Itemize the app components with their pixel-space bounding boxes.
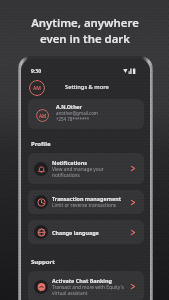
staticText: AM xyxy=(39,113,47,119)
staticText: another@gmail.com xyxy=(56,110,98,116)
staticText: +254 78******* xyxy=(56,116,90,122)
staticText: Activate Chat Banking xyxy=(52,277,112,284)
button[interactable]: AM xyxy=(28,99,144,129)
staticText: Transact and more with Equity's virtual … xyxy=(52,284,129,296)
staticText: 9:30 xyxy=(31,68,41,75)
button[interactable]: Account xyxy=(29,80,45,96)
staticText: AM xyxy=(33,85,41,92)
staticText: even in the dark xyxy=(40,31,130,47)
button[interactable]: Notifications xyxy=(28,153,144,184)
staticText: View and manage your notifications xyxy=(52,166,129,178)
staticText: Profile xyxy=(31,140,51,148)
staticText: A.N.Other xyxy=(56,103,83,110)
staticText: Transaction management xyxy=(52,195,121,202)
staticText: Notifications xyxy=(52,159,87,166)
button[interactable]: Change language xyxy=(28,220,144,244)
button[interactable]: Activate Chat Banking xyxy=(28,271,144,300)
staticText: Change language xyxy=(52,229,99,236)
staticText: Anytime, anywhere xyxy=(31,15,139,31)
button[interactable]: Transaction management xyxy=(28,190,144,214)
staticText: Limit or reverse transactions xyxy=(52,202,117,209)
staticText: Settings & more xyxy=(65,83,109,91)
staticText: Support xyxy=(31,258,55,266)
